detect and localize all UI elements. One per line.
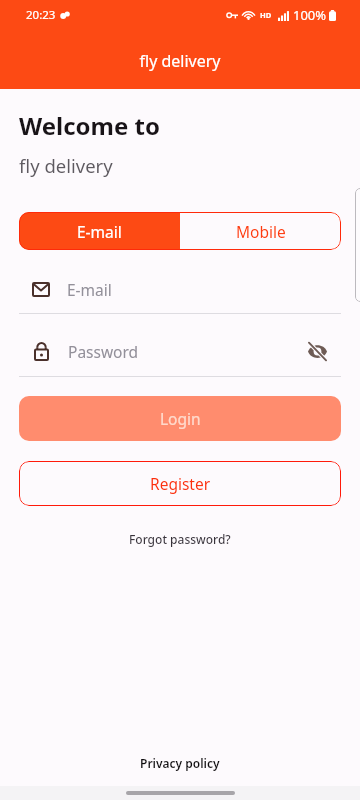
staticText: fly delivery [19,153,113,178]
staticText: HD [260,10,272,20]
staticText: 100% [293,6,327,24]
button[interactable]: Login [19,396,341,441]
staticText: E-mail [67,279,112,300]
staticText: E-mail [77,221,122,242]
button[interactable]: Privacy policy [128,749,232,777]
button[interactable]: Show password [300,334,334,368]
staticText: 20:23 [26,7,56,23]
button[interactable]: Mobile [180,212,341,250]
button[interactable]: E-mail [19,212,180,250]
button[interactable]: Forgot password? [117,525,243,553]
button[interactable]: Register [19,461,341,506]
staticText: Password [68,341,139,362]
staticText: Login [160,408,201,429]
staticText: Register [150,473,211,494]
staticText: fly delivery [0,50,360,72]
button[interactable]: E-mail [19,265,341,314]
staticText: Welcome to [19,109,160,142]
button[interactable]: Password [19,326,341,377]
staticText: Mobile [236,221,286,242]
